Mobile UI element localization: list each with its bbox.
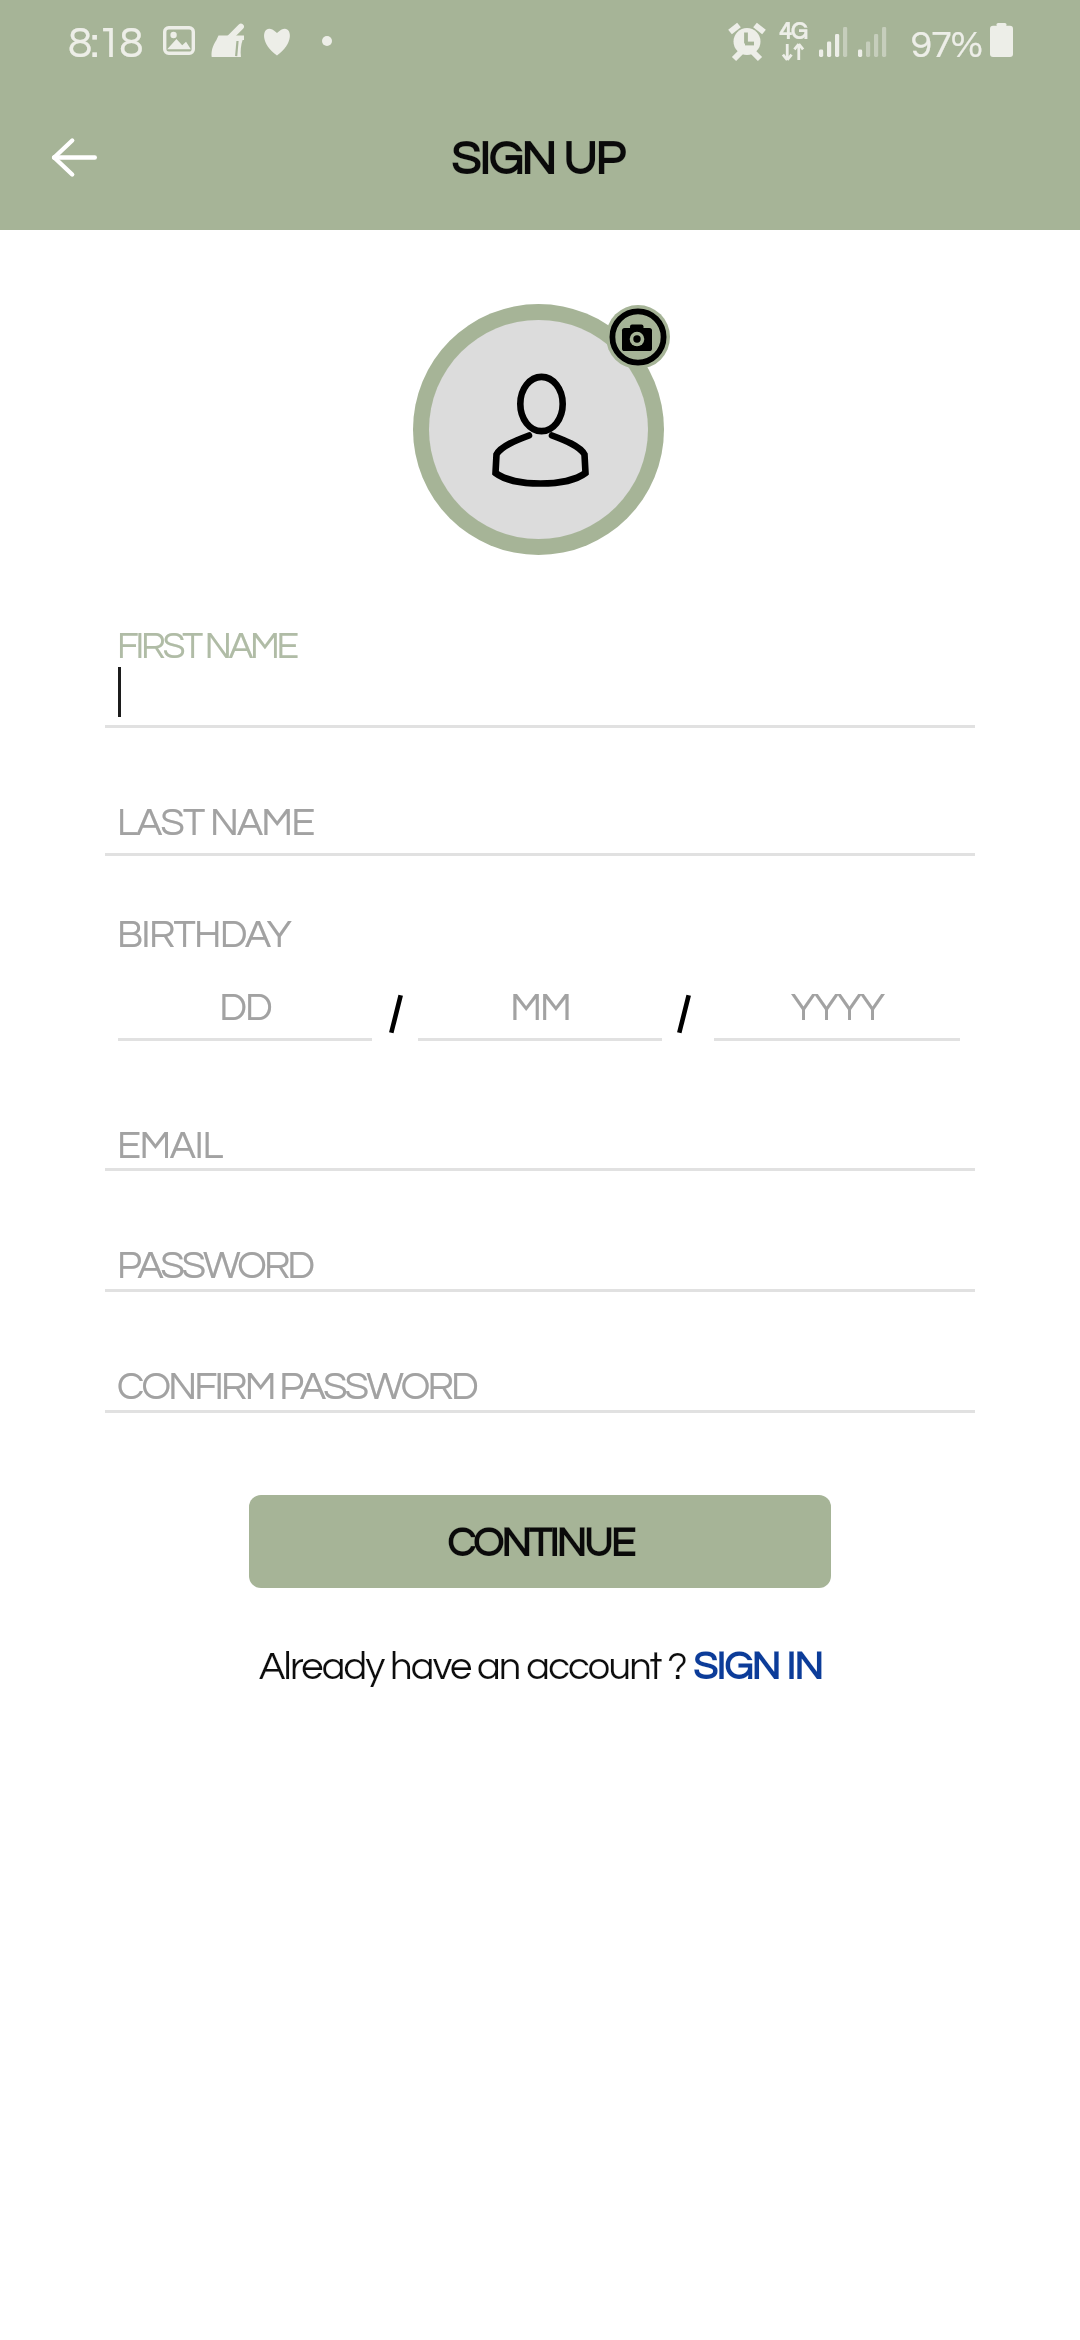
staticText: DD: [219, 988, 271, 1028]
button[interactable]: Back: [37, 120, 111, 194]
button[interactable]: [105, 1356, 975, 1413]
staticText: Already have an account ?: [259, 1646, 693, 1687]
button[interactable]: [105, 1235, 975, 1292]
staticText: CONTINUE: [447, 1523, 633, 1565]
staticText: CONFIRM PASSWORD: [117, 1367, 476, 1407]
button[interactable]: [118, 978, 372, 1042]
staticText: MM: [510, 988, 570, 1028]
staticText: 97%: [911, 26, 982, 65]
staticText: LAST NAME: [117, 803, 314, 843]
staticText: 4G: [779, 20, 807, 44]
staticText: PASSWORD: [117, 1246, 313, 1286]
button[interactable]: [105, 1115, 975, 1172]
staticText: SIGN IN: [693, 1646, 822, 1687]
staticText: YYYY: [791, 988, 883, 1028]
staticText: BIRTHDAY: [117, 915, 290, 955]
staticText: FIRST NAME: [117, 628, 296, 666]
button[interactable]: SIGN IN: [693, 1646, 822, 1687]
button[interactable]: [418, 978, 662, 1042]
staticText: 8:18: [68, 21, 142, 66]
button[interactable]: [105, 790, 975, 857]
button[interactable]: CONTINUE: [249, 1495, 831, 1588]
button[interactable]: Change profile photo: [606, 305, 670, 369]
button[interactable]: [714, 978, 960, 1042]
button[interactable]: Profile photo: [429, 320, 648, 539]
staticText: SIGN UP: [451, 135, 624, 184]
staticText: EMAIL: [117, 1126, 223, 1166]
button[interactable]: [105, 614, 975, 729]
